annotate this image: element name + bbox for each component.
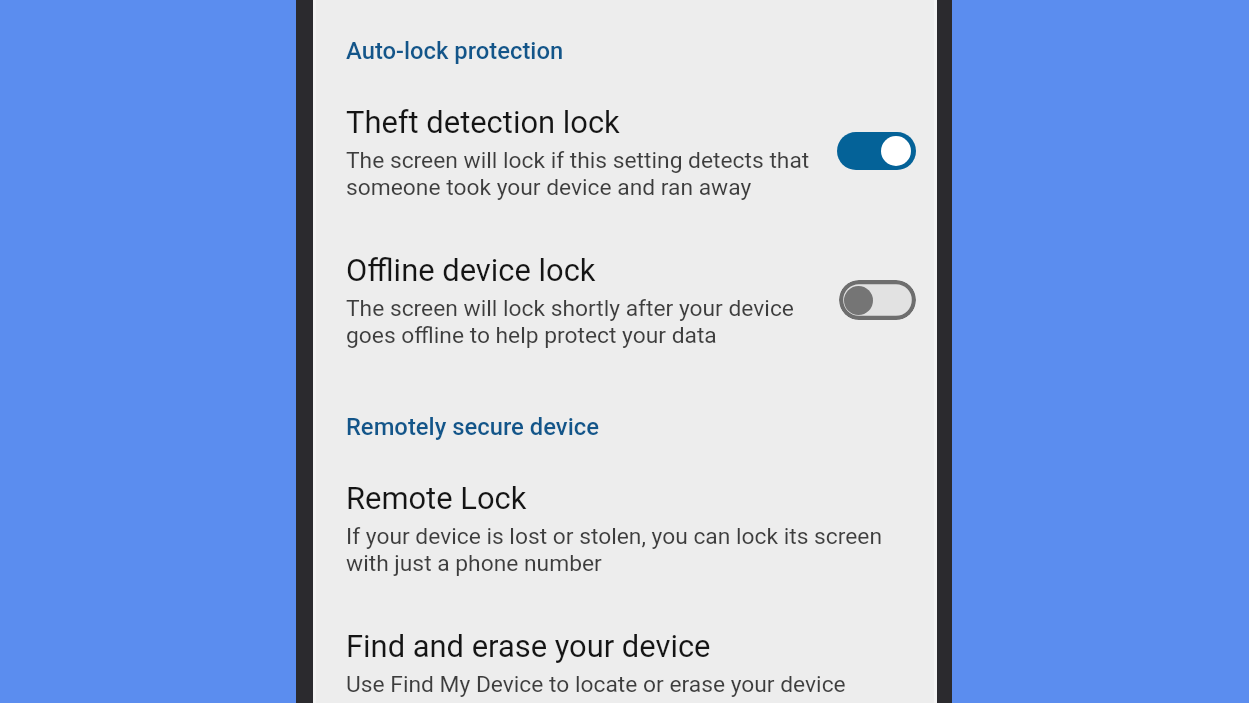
staticText: Remotely secure device (346, 414, 599, 441)
button[interactable]: Remote Lock (313, 480, 937, 577)
button[interactable]: Offline device lock, off (839, 280, 916, 320)
button[interactable]: Theft detection lock, on (837, 132, 916, 170)
button[interactable]: Theft detection lock (313, 104, 937, 201)
staticText: Theft detection lock (346, 104, 620, 140)
button[interactable]: Find and erase your device (313, 628, 937, 698)
staticText: Offline device lock (346, 252, 596, 288)
button[interactable]: Offline device lock (313, 252, 937, 349)
staticText: Remote Lock (346, 480, 527, 516)
staticText: Use Find My Device to locate or erase yo… (346, 671, 846, 698)
staticText: The screen will lock if this setting det… (346, 147, 821, 201)
staticText: Find and erase your device (346, 628, 711, 664)
staticText: The screen will lock shortly after your … (346, 295, 823, 349)
staticText: If your device is lost or stolen, you ca… (346, 523, 897, 577)
staticText: Auto-lock protection (346, 38, 564, 65)
